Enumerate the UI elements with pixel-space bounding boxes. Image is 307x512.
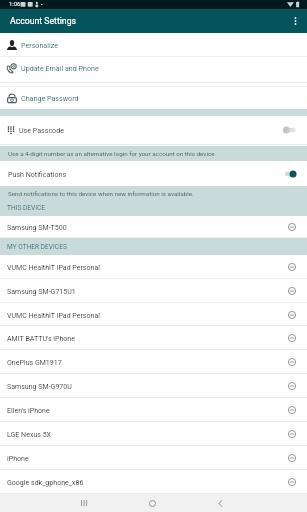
button[interactable]: Remove iPhone <box>283 449 301 467</box>
button[interactable]: Samsung SM-T500 <box>0 216 307 237</box>
button[interactable]: LGE Nexus 5X <box>0 422 307 445</box>
button[interactable]: More options <box>285 9 307 33</box>
button[interactable]: Switch off <box>279 123 298 137</box>
staticText: Samsung SM-G970U <box>7 382 72 390</box>
staticText: MY OTHER DEVICES <box>7 243 67 251</box>
button[interactable]: Back <box>211 494 229 512</box>
button[interactable]: Samsung SM-G715U1 <box>0 279 307 302</box>
button[interactable]: Push Notifications <box>0 161 307 186</box>
button[interactable]: Home <box>143 494 161 512</box>
button[interactable]: Google sdk_gphone_x86 <box>0 470 307 493</box>
button[interactable]: Ellen's iPhone <box>0 398 307 421</box>
staticText: 1:06 <box>9 1 21 8</box>
button[interactable]: VUMC HealthIT iPad Personal <box>0 303 307 326</box>
button[interactable]: Remove Ellen's iPhone <box>283 401 301 419</box>
button[interactable]: AMIT BATTU's iPhone <box>0 326 307 349</box>
staticText: THIS DEVICE <box>7 204 46 212</box>
staticText: Ellen's iPhone <box>7 406 50 414</box>
button[interactable]: Remove AMIT BATTU's iPhone <box>283 329 301 347</box>
staticText: Change Password <box>21 94 79 102</box>
staticText: Account Settings <box>10 16 77 26</box>
button[interactable]: Recent apps <box>75 494 93 512</box>
button[interactable]: Update Email and Phone <box>0 57 307 79</box>
staticText: iPhone <box>7 454 29 462</box>
button[interactable]: OnePlus GM1917 <box>0 350 307 373</box>
button[interactable]: Remove VUMC HealthIT iPad Personal <box>283 258 301 276</box>
button[interactable]: Switch on <box>279 167 298 181</box>
staticText: Samsung SM-G715U1 <box>7 287 76 295</box>
button[interactable]: Remove LGE Nexus 5X <box>283 425 301 443</box>
staticText: Send notifications to this device when n… <box>8 190 194 197</box>
staticText: Push Notifications <box>8 170 67 178</box>
button[interactable]: Remove Samsung SM-G715U1 <box>283 282 301 300</box>
staticText: VUMC HealthIT iPad Personal <box>7 263 100 271</box>
button[interactable]: Remove Samsung SM-G970U <box>283 377 301 395</box>
staticText: VUMC HealthIT iPad Personal <box>7 311 100 319</box>
button[interactable]: Remove Google sdk_gphone_x86 <box>283 473 301 491</box>
staticText: Samsung SM-T500 <box>7 223 67 231</box>
staticText: Update Email and Phone <box>21 64 99 72</box>
button[interactable]: Change Password <box>0 87 307 109</box>
staticText: Personalize <box>21 41 58 49</box>
staticText: Use a 4-digit number as an alternative l… <box>8 150 215 157</box>
button[interactable]: Samsung SM-G970U <box>0 374 307 397</box>
staticText: AMIT BATTU's iPhone <box>7 334 75 342</box>
staticText: LGE Nexus 5X <box>7 430 52 438</box>
button[interactable]: Use Passcode <box>0 116 307 144</box>
button[interactable]: Remove Samsung SM-T500 <box>283 218 301 236</box>
staticText: Google sdk_gphone_x86 <box>7 478 84 486</box>
button[interactable]: Remove OnePlus GM1917 <box>283 353 301 371</box>
button[interactable]: iPhone <box>0 446 307 469</box>
staticText: Use Passcode <box>19 126 64 134</box>
button[interactable]: VUMC HealthIT iPad Personal <box>0 255 307 278</box>
button[interactable]: Personalize <box>0 33 307 56</box>
staticText: OnePlus GM1917 <box>7 358 62 366</box>
button[interactable]: Remove VUMC HealthIT iPad Personal <box>283 306 301 324</box>
